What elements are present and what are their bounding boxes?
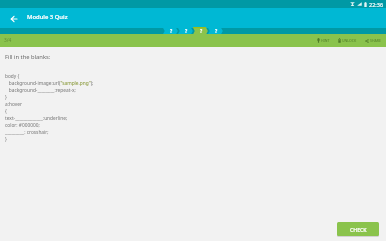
staticText: 22:36 [369, 1, 384, 8]
staticText: Fill in the blanks: [5, 53, 51, 61]
staticText: background-image:url("sample.png"); [5, 80, 94, 87]
button[interactable]: CHECK [337, 222, 379, 236]
staticText: background-________:repeat-x; [5, 87, 76, 94]
staticText: ? [170, 28, 173, 34]
staticText: color: #000000; [5, 122, 40, 129]
staticText: body { [5, 73, 20, 80]
staticText: text-_____________:underline; [5, 115, 68, 122]
button[interactable]: Question [208, 28, 223, 34]
staticText: SHARE [370, 38, 381, 43]
staticText: } [5, 94, 7, 101]
button[interactable]: Question [163, 28, 178, 34]
staticText: Module 3 Quiz [27, 13, 68, 21]
staticText: ? [200, 28, 203, 34]
staticText: HINT [321, 38, 330, 43]
staticText: 3/4 [4, 37, 12, 44]
staticText: _________: crosshair; [5, 129, 49, 136]
button[interactable]: HINT [313, 34, 334, 47]
button[interactable]: Question [193, 28, 208, 34]
staticText: } [5, 136, 7, 143]
staticText: ? [215, 28, 218, 34]
staticText: ? [185, 28, 188, 34]
staticText: a:hover [5, 101, 22, 108]
button[interactable]: SHARE [361, 34, 385, 47]
staticText: CHECK [350, 226, 367, 233]
button[interactable]: Back [6, 11, 21, 26]
staticText: { [5, 108, 7, 115]
button[interactable]: UNLOCK [334, 34, 361, 47]
button[interactable]: Question [178, 28, 193, 34]
staticText: UNLOCK [342, 38, 357, 43]
